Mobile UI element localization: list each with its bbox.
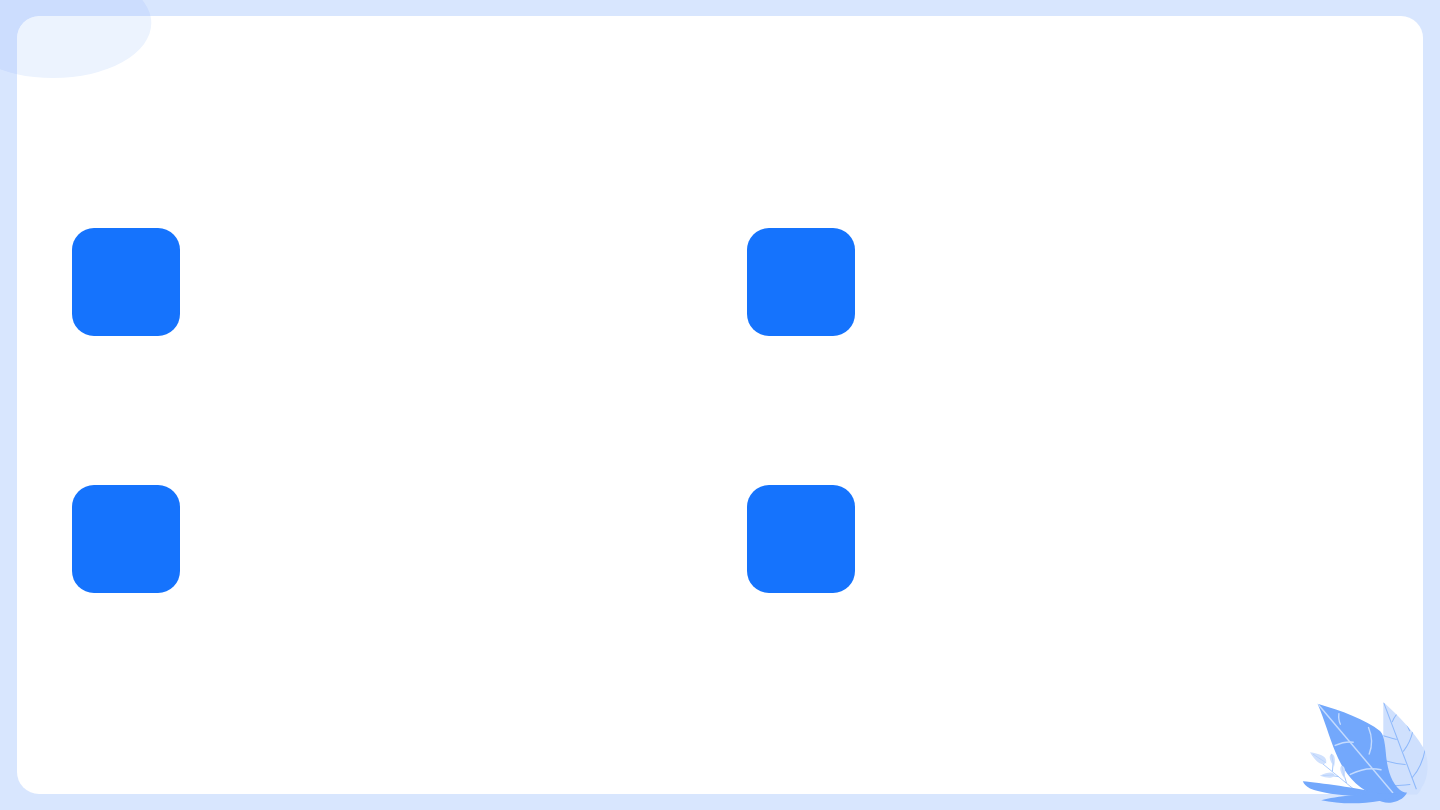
button[interactable]: Item four (747, 485, 855, 593)
button[interactable]: Item two (747, 228, 855, 336)
button[interactable]: Item three (72, 485, 180, 593)
button[interactable]: Item one (72, 228, 180, 336)
